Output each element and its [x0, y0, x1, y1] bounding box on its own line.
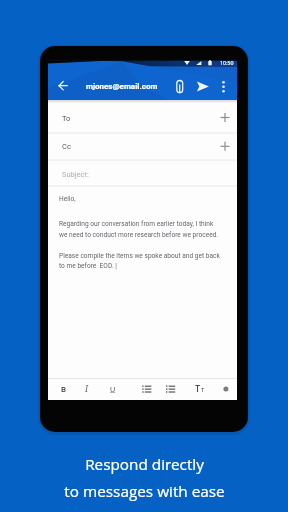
staticText: I — [85, 384, 89, 394]
button[interactable] — [55, 78, 71, 94]
button[interactable] — [172, 78, 188, 94]
button[interactable]: B — [61, 380, 67, 398]
staticText: T — [195, 384, 201, 394]
button[interactable] — [48, 160, 237, 186]
button[interactable] — [195, 78, 211, 94]
staticText: 10:50 — [220, 60, 234, 66]
staticText: Subject: — [62, 170, 89, 179]
staticText: Cc — [62, 142, 71, 151]
staticText: Respond directly — [85, 454, 204, 475]
button[interactable] — [48, 133, 237, 160]
staticText: we need to conduct more research before … — [59, 231, 219, 239]
staticText: B — [61, 385, 67, 394]
button[interactable]: T — [195, 380, 201, 398]
staticText: to me before EOD. | — [59, 262, 117, 270]
staticText: mjones@email.com — [86, 82, 158, 91]
button[interactable]: U — [110, 380, 116, 398]
button[interactable]: I — [85, 380, 89, 398]
staticText: Regarding our conversation from earlier … — [59, 220, 214, 228]
staticText: Please compile the items we spoke about … — [59, 252, 220, 260]
staticText: T — [201, 387, 205, 393]
staticText: U — [110, 385, 116, 394]
staticText: Hello, — [59, 195, 76, 203]
staticText: to messages with ease — [64, 481, 225, 502]
button[interactable] — [216, 78, 231, 94]
button[interactable] — [48, 101, 237, 133]
staticText: To — [62, 114, 71, 123]
